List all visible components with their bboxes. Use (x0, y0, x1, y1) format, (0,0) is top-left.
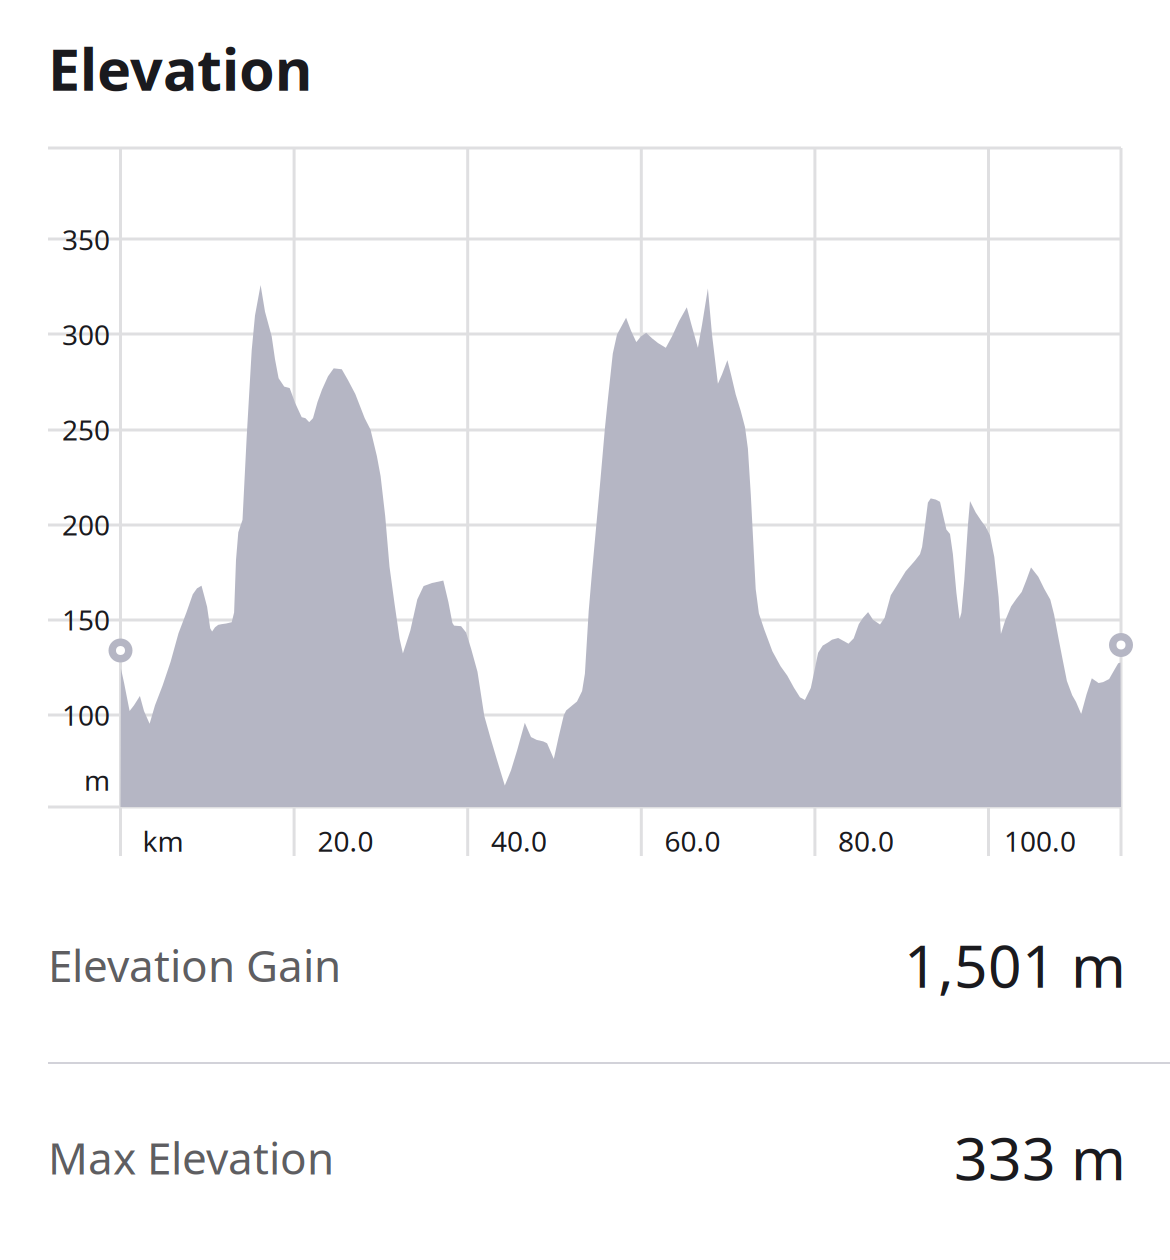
staticText: m (84, 761, 110, 799)
staticText: 150 (62, 601, 110, 638)
staticText: 300 (62, 316, 110, 353)
staticText: 333 m (954, 1118, 1126, 1196)
staticText: km (142, 822, 183, 860)
staticText: 80.0 (838, 822, 894, 860)
staticText: 20.0 (317, 822, 373, 860)
button[interactable]: Elevation Gain (48, 905, 1126, 1025)
staticText: Elevation (48, 30, 312, 106)
staticText: 60.0 (664, 822, 720, 860)
staticText: Elevation Gain (48, 936, 341, 994)
staticText: 40.0 (491, 822, 547, 860)
staticText: 350 (62, 221, 110, 258)
staticText: 200 (62, 506, 110, 543)
button[interactable]: Range end (1109, 633, 1133, 657)
button[interactable]: Max Elevation (48, 1097, 1126, 1217)
staticText: 250 (62, 411, 110, 448)
button[interactable]: Range start (108, 638, 132, 662)
staticText: 100 (62, 696, 110, 733)
staticText: 1,501 m (904, 926, 1126, 1004)
staticText: 100.0 (1004, 822, 1076, 860)
staticText: Max Elevation (48, 1128, 334, 1187)
